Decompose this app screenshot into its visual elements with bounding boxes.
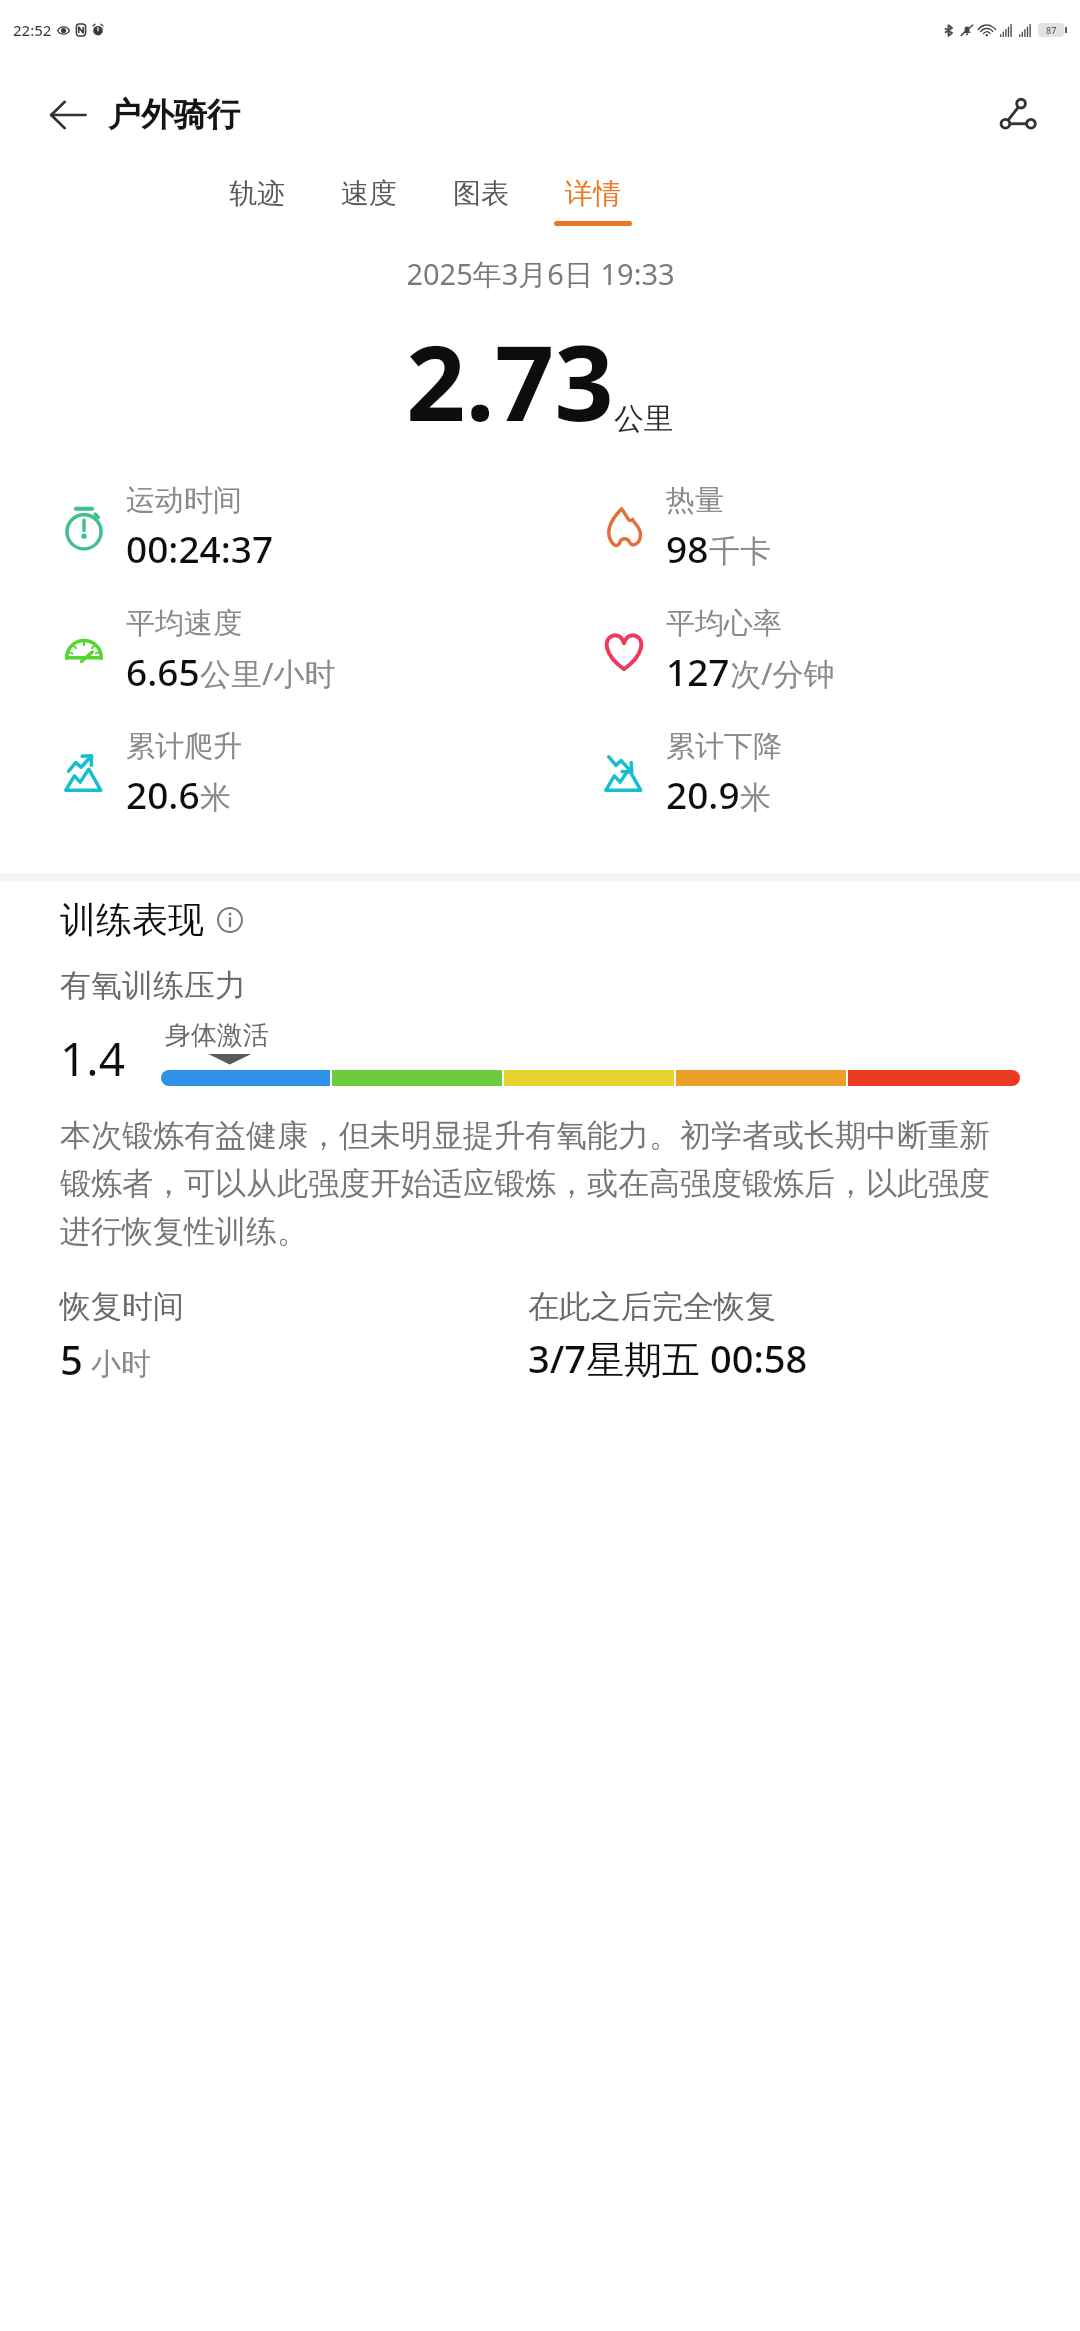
staticText: 米 — [200, 778, 231, 817]
staticText: 图表 — [453, 176, 509, 211]
staticText: 22:52 — [13, 20, 52, 40]
staticText: 速度 — [341, 176, 397, 211]
button[interactable]: 运动时间 — [0, 482, 540, 573]
staticText: 20.6 — [126, 769, 200, 819]
button[interactable]: Back — [40, 87, 96, 143]
staticText: 98 — [666, 523, 709, 573]
button[interactable]: 热量 — [540, 482, 1080, 573]
button[interactable]: 平均速度 — [0, 605, 540, 696]
staticText: 千卡 — [709, 532, 771, 571]
button[interactable]: 平均心率 — [540, 605, 1080, 696]
staticText: 累计下降 — [666, 728, 782, 765]
staticText: 恢复时间 — [60, 1287, 184, 1326]
button[interactable]: Share — [986, 83, 1050, 147]
staticText: 公里 — [614, 400, 674, 438]
button[interactable]: 轨迹 — [218, 170, 296, 232]
staticText: 87 — [1046, 24, 1057, 36]
staticText: 平均速度 — [126, 605, 242, 642]
staticText: 127 — [666, 646, 730, 696]
staticText: 2.73 — [406, 310, 614, 452]
staticText: 00:24:37 — [126, 523, 274, 573]
staticText: 轨迹 — [229, 176, 285, 211]
staticText: 本次锻炼有益健康，但未明显提升有氧能力。初学者或长期中断重新锻炼者，可以从此强度… — [60, 1116, 1020, 1251]
staticText: 训练表现 — [60, 897, 204, 942]
button[interactable]: 速度 — [330, 170, 408, 232]
staticText: 2025年3月6日 19:33 — [406, 254, 675, 294]
staticText: 运动时间 — [126, 482, 242, 519]
button[interactable]: 累计下降 — [540, 728, 1080, 819]
staticText: 有氧训练压力 — [60, 966, 246, 1005]
button[interactable]: Info — [214, 904, 246, 936]
button[interactable]: 累计爬升 — [0, 728, 540, 819]
button[interactable]: 图表 — [442, 170, 520, 232]
staticText: 次/分钟 — [730, 652, 835, 694]
staticText: 6.65 — [126, 646, 200, 696]
staticText: 累计爬升 — [126, 728, 242, 765]
staticText: 在此之后完全恢复 — [528, 1287, 776, 1326]
staticText: 平均心率 — [666, 605, 782, 642]
staticText: 身体激活 — [165, 1019, 269, 1052]
staticText: 1.4 — [60, 1027, 125, 1090]
staticText: 热量 — [666, 482, 724, 519]
staticText: 米 — [740, 778, 771, 817]
staticText: 户外骑行 — [108, 94, 240, 136]
staticText: 3/7星期五 00:58 — [528, 1332, 808, 1384]
staticText: 小时 — [91, 1345, 151, 1383]
staticText: 20.9 — [666, 769, 740, 819]
button[interactable]: 详情 — [554, 170, 632, 232]
staticText: 公里/小时 — [200, 652, 336, 694]
staticText: 详情 — [565, 176, 621, 211]
staticText: 5 — [60, 1332, 83, 1386]
